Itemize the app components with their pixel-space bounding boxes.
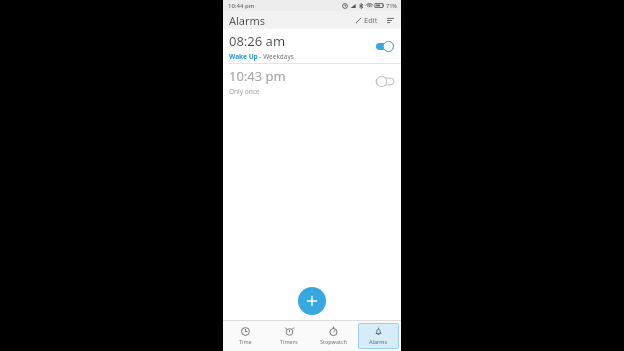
- staticText: 10:43 pm: [229, 67, 286, 85]
- staticText: Only once: [229, 87, 260, 96]
- button[interactable]: 10:43 pm: [223, 64, 401, 98]
- staticText: Timers: [280, 338, 298, 345]
- staticText: Edit: [364, 15, 378, 25]
- staticText: Alarms: [369, 338, 388, 345]
- staticText: Time: [239, 338, 252, 345]
- button[interactable]: Time: [225, 323, 265, 349]
- staticText: Alarms: [229, 13, 266, 28]
- button[interactable]: Edit: [353, 13, 380, 27]
- button[interactable]: Stopwatch: [313, 323, 354, 349]
- staticText: 10:44 pm: [228, 2, 255, 10]
- button[interactable]: 08:26 am: [223, 29, 401, 63]
- staticText: 08:26 am: [229, 32, 286, 50]
- button[interactable]: Alarm off: [376, 76, 394, 87]
- staticText: 71%: [386, 2, 397, 9]
- button[interactable]: Timers: [269, 323, 309, 349]
- button[interactable]: Add alarm: [298, 287, 326, 315]
- button[interactable]: Alarm on: [376, 41, 394, 52]
- button[interactable]: Sort: [384, 14, 396, 26]
- button[interactable]: Alarms: [358, 323, 399, 349]
- staticText: Stopwatch: [320, 338, 348, 345]
- staticText: Wake Up - Weekdays: [229, 52, 294, 61]
